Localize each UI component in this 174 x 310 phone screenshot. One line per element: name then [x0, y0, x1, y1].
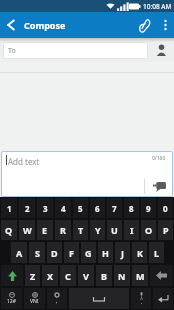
- button[interactable]: C: [60, 265, 76, 286]
- button[interactable]: [156, 12, 174, 38]
- button[interactable]: 3: [37, 198, 53, 218]
- button[interactable]: [146, 177, 173, 197]
- staticText: S: [35, 247, 40, 259]
- staticText: 5: [78, 203, 83, 214]
- button[interactable]: 12#: [1, 288, 22, 309]
- staticText: P: [163, 224, 169, 236]
- staticText: 1: [7, 203, 12, 214]
- button[interactable]: 5: [73, 198, 88, 218]
- button[interactable]: 2: [19, 198, 35, 218]
- staticText: Y: [95, 224, 101, 236]
- button[interactable]: E: [37, 220, 53, 240]
- staticText: ,: [56, 298, 58, 305]
- button[interactable]: M: [132, 265, 148, 286]
- staticText: 8: [129, 203, 134, 214]
- button[interactable]: Z: [25, 265, 40, 286]
- button[interactable]: U: [107, 220, 122, 240]
- staticText: X: [47, 270, 54, 282]
- button[interactable]: O: [141, 220, 156, 240]
- button[interactable]: X: [42, 265, 58, 286]
- button[interactable]: L: [149, 242, 164, 263]
- button[interactable]: W: [19, 220, 35, 240]
- staticText: 6: [95, 203, 100, 214]
- button[interactable]: [132, 12, 156, 38]
- button[interactable]: G: [81, 242, 96, 263]
- staticText: I: [130, 224, 134, 236]
- staticText: Compose: [24, 19, 66, 31]
- staticText: L: [154, 247, 160, 259]
- staticText: G: [85, 247, 92, 259]
- staticText: 4: [61, 203, 66, 214]
- button[interactable]: B: [96, 265, 112, 286]
- staticText: Z: [30, 270, 36, 282]
- staticText: A: [16, 247, 23, 259]
- staticText: 10:08 AM: [143, 2, 172, 11]
- button[interactable]: [148, 38, 174, 62]
- staticText: D: [51, 247, 58, 259]
- staticText: M: [136, 270, 145, 282]
- button[interactable]: [150, 265, 173, 286]
- staticText: Add text: [8, 156, 40, 167]
- staticText: C: [65, 270, 71, 282]
- staticText: 7: [112, 203, 117, 214]
- staticText: W: [23, 224, 32, 236]
- staticText: 9: [146, 203, 151, 214]
- staticText: N: [118, 270, 126, 282]
- staticText: V: [83, 270, 89, 282]
- staticText: J: [121, 247, 124, 259]
- button[interactable]: .: [131, 288, 151, 309]
- staticText: 0/160: [152, 155, 166, 162]
- staticText: H: [102, 247, 109, 259]
- button[interactable]: P: [158, 220, 173, 240]
- button[interactable]: K: [132, 242, 147, 263]
- button[interactable]: 1: [1, 198, 17, 218]
- button[interactable]: 7: [107, 198, 122, 218]
- staticText: To: [8, 46, 16, 56]
- staticText: VNI: [30, 298, 39, 305]
- button[interactable]: I: [124, 220, 139, 240]
- staticText: 0: [163, 203, 168, 214]
- staticText: Q: [5, 224, 13, 236]
- staticText: 3: [43, 203, 48, 214]
- button[interactable]: [1, 265, 23, 286]
- button[interactable]: 9: [141, 198, 156, 218]
- button[interactable]: 6: [90, 198, 105, 218]
- button[interactable]: D: [47, 242, 62, 263]
- button[interactable]: T: [73, 220, 88, 240]
- button[interactable]: H: [98, 242, 113, 263]
- staticText: F: [69, 247, 74, 259]
- button[interactable]: VNI: [24, 288, 45, 309]
- button[interactable]: [69, 288, 129, 309]
- button[interactable]: N: [114, 265, 130, 286]
- button[interactable]: R: [55, 220, 71, 240]
- button[interactable]: [153, 288, 173, 309]
- staticText: B: [101, 270, 107, 282]
- button[interactable]: 8: [124, 198, 139, 218]
- button[interactable]: A: [11, 242, 27, 263]
- button[interactable]: ,: [47, 288, 67, 309]
- staticText: O: [145, 224, 153, 236]
- button[interactable]: J: [115, 242, 130, 263]
- staticText: .: [141, 299, 143, 306]
- button[interactable]: V: [78, 265, 94, 286]
- button[interactable]: S: [29, 242, 45, 263]
- staticText: 2: [25, 203, 30, 214]
- staticText: T: [78, 224, 84, 236]
- button[interactable]: 0: [158, 198, 173, 218]
- staticText: R: [60, 224, 66, 236]
- staticText: 12#: [7, 298, 16, 305]
- button[interactable]: Q: [1, 220, 17, 240]
- button[interactable]: [0, 12, 22, 38]
- button[interactable]: To: [3, 42, 148, 59]
- button[interactable]: Y: [90, 220, 105, 240]
- button[interactable]: 4: [55, 198, 71, 218]
- button[interactable]: Add text: [1, 151, 173, 197]
- button[interactable]: F: [64, 242, 79, 263]
- staticText: U: [111, 224, 118, 236]
- staticText: K: [137, 247, 143, 259]
- staticText: E: [42, 224, 48, 236]
